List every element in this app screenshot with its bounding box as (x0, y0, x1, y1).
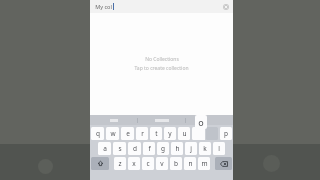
staticText: y (168, 129, 172, 138)
button[interactable]: c (142, 157, 154, 170)
button[interactable] (186, 115, 233, 125)
button[interactable]: r (136, 127, 148, 140)
button[interactable]: m (198, 157, 210, 170)
staticText: w (110, 129, 116, 138)
button[interactable]: a (98, 142, 111, 155)
button[interactable]: Backspace (215, 157, 232, 170)
staticText: z (118, 159, 122, 168)
button[interactable]: z (114, 157, 126, 170)
staticText: h (175, 144, 180, 153)
staticText: e (126, 129, 130, 138)
staticText: p (224, 129, 228, 138)
button[interactable]: Clear text (223, 4, 229, 10)
button[interactable]: k (199, 142, 211, 155)
button[interactable]: v (156, 157, 168, 170)
staticText: No Collections (145, 56, 179, 63)
button[interactable]: x (128, 157, 140, 170)
button[interactable]: h (171, 142, 183, 155)
staticText: v (160, 159, 164, 168)
staticText: b (174, 159, 178, 168)
staticText: Tap to create collection (134, 65, 189, 72)
staticText: f (148, 144, 151, 153)
staticText: g (161, 144, 165, 153)
button[interactable]: f (143, 142, 155, 155)
button[interactable]: My col (90, 0, 233, 13)
staticText: r (141, 129, 144, 138)
staticText: j (190, 144, 192, 153)
staticText: a (103, 144, 107, 153)
staticText: l (218, 144, 220, 153)
staticText: q (96, 129, 100, 138)
button[interactable]: q (91, 127, 104, 140)
staticText: My col (95, 3, 112, 10)
button[interactable]: t (150, 127, 162, 140)
button[interactable]: p (220, 127, 232, 140)
staticText: n (188, 159, 193, 168)
button[interactable]: l (213, 142, 225, 155)
button[interactable] (138, 115, 185, 125)
staticText: d (133, 144, 137, 153)
button[interactable]: n (184, 157, 196, 170)
button[interactable]: u (178, 127, 190, 140)
staticText: t (155, 129, 158, 138)
button[interactable] (90, 115, 137, 125)
staticText: c (146, 159, 150, 168)
button[interactable]: g (157, 142, 169, 155)
button[interactable]: d (128, 142, 141, 155)
staticText: o (198, 116, 204, 128)
staticText: m (201, 159, 208, 168)
button[interactable]: Shift (91, 157, 109, 170)
button[interactable] (206, 127, 218, 140)
staticText: u (182, 129, 187, 138)
staticText: k (203, 144, 207, 153)
button[interactable]: j (185, 142, 197, 155)
button[interactable]: s (113, 142, 126, 155)
button[interactable]: w (106, 127, 119, 140)
button[interactable]: e (121, 127, 134, 140)
staticText: x (132, 159, 136, 168)
button[interactable]: y (164, 127, 176, 140)
button[interactable]: b (170, 157, 182, 170)
staticText: s (118, 144, 122, 153)
